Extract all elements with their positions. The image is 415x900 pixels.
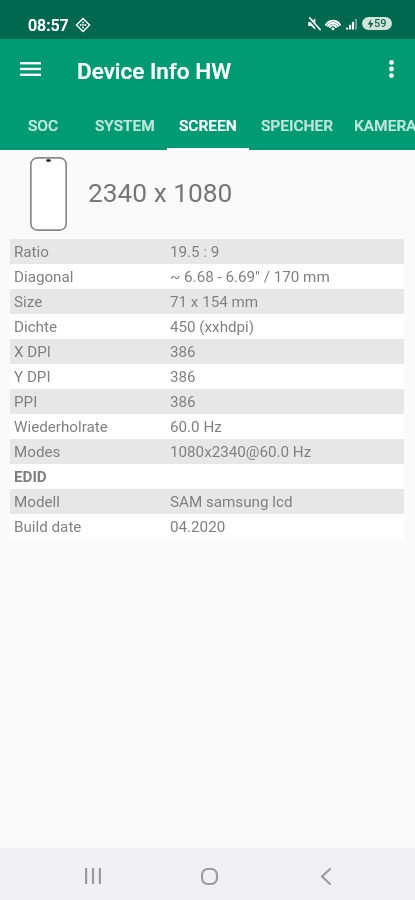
button[interactable]: Ratio: [10, 239, 404, 264]
staticText: KAMERA: [354, 117, 415, 135]
staticText: Modell: [14, 493, 170, 511]
button[interactable]: Dichte: [10, 314, 404, 339]
button[interactable]: PPI: [10, 389, 404, 414]
staticText: 2340 x 1080: [88, 178, 233, 209]
staticText: 04.2020: [170, 518, 226, 536]
staticText: 386: [170, 393, 196, 411]
button[interactable]: Wiederholrate: [10, 414, 404, 439]
staticText: EDID: [14, 468, 170, 486]
button[interactable]: Home: [185, 852, 233, 900]
button[interactable]: SOC: [0, 96, 86, 151]
staticText: Dichte: [14, 318, 170, 336]
staticText: PPI: [14, 393, 170, 411]
staticText: Size: [14, 293, 170, 311]
button[interactable]: KAMERA: [354, 96, 415, 151]
staticText: 59: [374, 17, 387, 30]
button[interactable]: Size: [10, 289, 404, 314]
staticText: 19.5 : 9: [170, 243, 220, 261]
staticText: Device Info HW: [77, 58, 232, 84]
staticText: SPEICHER: [261, 117, 333, 135]
staticText: SYSTEM: [95, 117, 155, 135]
staticText: SOC: [28, 117, 59, 135]
staticText: 08:57: [28, 16, 69, 35]
staticText: 71 x 154 mm: [170, 293, 259, 311]
staticText: Diagonal: [14, 268, 170, 286]
staticText: Build date: [14, 518, 170, 536]
button[interactable]: Build date: [10, 514, 404, 539]
button[interactable]: SYSTEM: [86, 96, 164, 151]
button[interactable]: Diagonal: [10, 264, 404, 289]
staticText: 1080x2340@60.0 Hz: [170, 443, 312, 461]
button[interactable]: Y DPI: [10, 364, 404, 389]
button[interactable]: Recent apps: [69, 852, 117, 900]
staticText: Wiederholrate: [14, 418, 170, 436]
button[interactable]: Modell: [10, 489, 404, 514]
staticText: 386: [170, 368, 196, 386]
staticText: X DPI: [14, 343, 170, 361]
staticText: Y DPI: [14, 368, 170, 386]
button[interactable]: SCREEN: [164, 96, 252, 151]
staticText: ~ 6.68 - 6.69" / 170 mm: [170, 268, 330, 286]
staticText: 60.0 Hz: [170, 418, 222, 436]
button[interactable]: X DPI: [10, 339, 404, 364]
staticText: SCREEN: [179, 117, 237, 135]
button[interactable]: Open navigation menu: [6, 45, 54, 93]
staticText: 450 (xxhdpi): [170, 318, 255, 336]
staticText: Ratio: [14, 243, 170, 261]
button[interactable]: EDID: [10, 464, 404, 489]
staticText: SAM samsung lcd: [170, 493, 293, 511]
staticText: Modes: [14, 443, 170, 461]
button[interactable]: More options: [367, 45, 415, 93]
button[interactable]: Back: [302, 852, 350, 900]
staticText: 386: [170, 343, 196, 361]
button[interactable]: Modes: [10, 439, 404, 464]
button[interactable]: SPEICHER: [252, 96, 342, 151]
